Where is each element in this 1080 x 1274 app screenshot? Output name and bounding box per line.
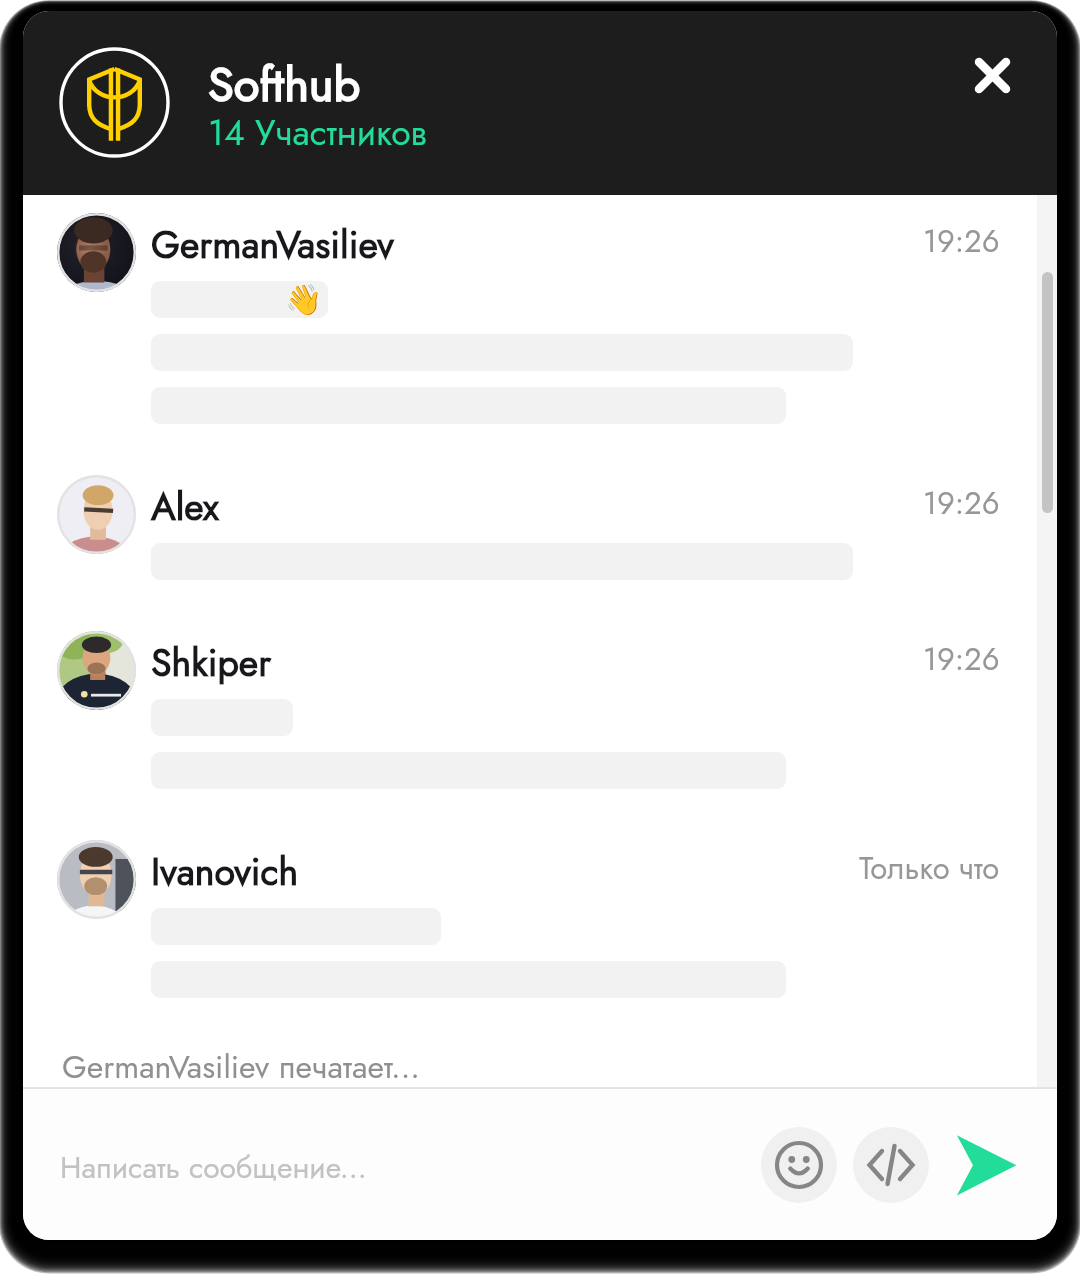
staticText: 14 Участников: [208, 107, 427, 158]
staticText: Alex: [151, 480, 219, 534]
button[interactable]: Insert emoji: [761, 1127, 837, 1203]
staticText: 19:26: [923, 219, 1000, 264]
button[interactable]: Send message: [943, 1127, 1019, 1203]
staticText: Ivanovich: [151, 845, 299, 899]
button[interactable]: Alex: [23, 480, 1057, 580]
staticText: Только что: [859, 846, 1000, 891]
button[interactable]: GermanVasiliev: [23, 218, 1057, 424]
staticText: 19:26: [923, 481, 1000, 526]
staticText: 19:26: [923, 637, 1000, 682]
button[interactable]: Insert code: [853, 1127, 929, 1203]
staticText: Shkiper: [151, 636, 272, 690]
staticText: Softhub: [208, 51, 361, 119]
button[interactable]: Shkiper: [23, 636, 1057, 789]
staticText: GermanVasiliev печатает...: [62, 1044, 420, 1090]
button[interactable]: Close: [949, 32, 1036, 119]
staticText: Написать сообщение...: [60, 1146, 367, 1189]
button[interactable]: Ivanovich: [23, 845, 1057, 998]
staticText: GermanVasiliev: [151, 218, 394, 272]
staticText: 👋: [285, 282, 323, 317]
